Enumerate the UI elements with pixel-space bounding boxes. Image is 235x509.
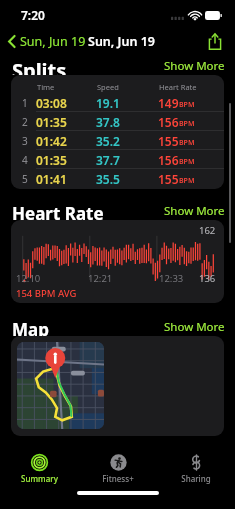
button[interactable]: Show More <box>164 58 225 74</box>
staticText: Sun, Jun 19 <box>88 33 155 50</box>
staticText: 136 <box>199 272 216 285</box>
staticText: Map <box>12 318 49 336</box>
button[interactable]: Summary <box>0 447 79 491</box>
staticText: Heart Rate <box>159 82 197 92</box>
staticText: 156 <box>158 152 179 168</box>
staticText: BPM <box>179 157 195 167</box>
button[interactable]: Fitness+ <box>79 447 157 491</box>
button[interactable]: Sun, Jun 19 <box>6 31 88 52</box>
staticText: Summary <box>21 473 58 484</box>
button[interactable] <box>11 336 224 436</box>
staticText: 162 <box>199 224 216 237</box>
staticText: 37.7 <box>96 152 120 168</box>
staticText: 35.5 <box>96 171 120 187</box>
staticText: 35.2 <box>96 133 120 149</box>
staticText: 37.8 <box>96 114 120 130</box>
staticText: Time <box>37 82 55 92</box>
button[interactable]: Show More <box>164 203 225 219</box>
staticText: Sun, Jun 19 <box>20 33 86 50</box>
staticText: 19.1 <box>96 95 120 111</box>
button[interactable]: Show More <box>164 319 225 335</box>
staticText: Show More <box>164 203 225 219</box>
staticText: BPM <box>179 176 195 186</box>
staticText: Speed <box>97 82 119 92</box>
staticText: 01:42 <box>36 133 67 149</box>
staticText: 3 <box>22 134 28 148</box>
button[interactable]: 162 <box>11 220 224 303</box>
staticText: Heart Rate <box>12 202 104 220</box>
staticText: 155 <box>158 133 179 149</box>
staticText: 149 <box>158 95 179 111</box>
staticText: 155 <box>158 171 179 187</box>
button[interactable]: Sharing <box>157 447 235 491</box>
staticText: 03:08 <box>36 95 67 111</box>
staticText: Show More <box>164 319 225 335</box>
button[interactable]: Share <box>204 30 226 52</box>
staticText: Sharing <box>181 473 211 484</box>
staticText: 154 BPM AVG <box>16 287 77 300</box>
staticText: Fitness+ <box>102 473 134 484</box>
button[interactable]: Time <box>11 75 224 189</box>
staticText: BPM <box>179 100 195 110</box>
staticText: Show More <box>164 58 225 74</box>
staticText: 2 <box>22 115 28 129</box>
staticText: 4 <box>22 153 28 167</box>
staticText: BPM <box>179 119 195 129</box>
staticText: BPM <box>179 138 195 148</box>
staticText: 12:33 <box>159 272 184 285</box>
staticText: 5 <box>22 172 28 186</box>
staticText: 01:35 <box>36 152 67 168</box>
staticText: 1 <box>22 96 28 110</box>
staticText: 12:10 <box>16 272 41 285</box>
staticText: 12:21 <box>88 272 113 285</box>
staticText: 7:20 <box>21 7 45 23</box>
staticText: Splits <box>12 57 67 75</box>
staticText: 01:41 <box>36 171 67 187</box>
staticText: 01:35 <box>36 114 67 130</box>
staticText: 156 <box>158 114 179 130</box>
